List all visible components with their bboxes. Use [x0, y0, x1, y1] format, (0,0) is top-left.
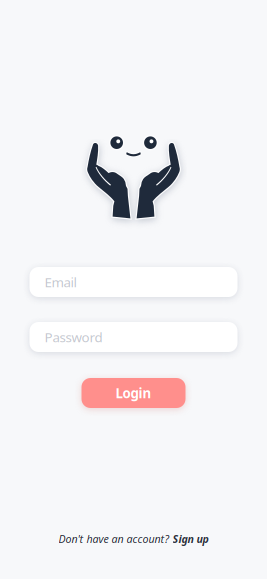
button[interactable]: Email — [29, 267, 237, 297]
staticText: Don't have an account? — [58, 532, 172, 546]
button[interactable]: Don't have an account? — [58, 532, 208, 546]
staticText: Login — [115, 384, 151, 402]
staticText: Email — [44, 273, 76, 291]
staticText: Password — [44, 328, 102, 346]
button[interactable]: Password — [29, 322, 237, 352]
staticText: Sign up — [172, 532, 208, 546]
button[interactable]: Login — [81, 378, 185, 408]
